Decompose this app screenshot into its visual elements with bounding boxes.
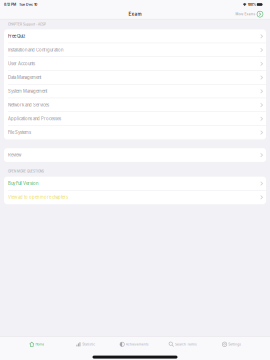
staticText: Network and Services bbox=[8, 102, 49, 108]
button[interactable]: System Management bbox=[4, 84, 266, 98]
staticText: Tue Dec 10 bbox=[16, 2, 37, 7]
staticText: Search Terms bbox=[175, 342, 197, 346]
staticText: File Systems bbox=[8, 130, 31, 135]
staticText: Review bbox=[8, 152, 21, 158]
staticText: Free Quiz bbox=[8, 34, 25, 39]
staticText: Data Management bbox=[8, 75, 41, 80]
staticText: View ad to open more chapters bbox=[8, 195, 68, 200]
button[interactable]: Data Management bbox=[4, 71, 266, 84]
staticText: Home bbox=[35, 342, 44, 346]
button[interactable]: Statistic bbox=[61, 337, 110, 352]
button[interactable]: User Accounts bbox=[4, 57, 266, 71]
staticText: System Management bbox=[8, 89, 47, 94]
button[interactable]: Settings bbox=[207, 337, 256, 352]
staticText: Statistic bbox=[82, 342, 95, 346]
staticText: CHAPTER Support - ACSP bbox=[8, 22, 46, 26]
staticText: 100% bbox=[247, 2, 256, 7]
staticText: Buy Full Version bbox=[8, 181, 38, 186]
button[interactable]: Home bbox=[12, 337, 61, 352]
button[interactable]: File Systems bbox=[4, 126, 266, 139]
button[interactable]: View ad to open more chapters bbox=[4, 190, 266, 204]
button[interactable]: Achievements bbox=[110, 337, 159, 352]
button[interactable]: Search Terms bbox=[159, 337, 207, 352]
button[interactable]: Free Quiz bbox=[4, 29, 266, 43]
button[interactable]: More Exams bbox=[235, 10, 263, 19]
button[interactable]: Network and Services bbox=[4, 98, 266, 112]
staticText: Installation and Configuration bbox=[8, 47, 63, 53]
staticText: OPEN MORE QUESTIONS bbox=[8, 170, 44, 173]
staticText: Settings bbox=[228, 342, 241, 346]
button[interactable]: Review bbox=[4, 148, 266, 162]
staticText: More Exams bbox=[235, 12, 255, 16]
staticText: Applications and Processes bbox=[8, 116, 61, 121]
staticText: Achievements bbox=[126, 342, 149, 346]
button[interactable]: Buy Full Version bbox=[4, 177, 266, 190]
button[interactable]: Installation and Configuration bbox=[4, 43, 266, 57]
staticText: 8:12 PM bbox=[4, 2, 16, 7]
button[interactable]: Applications and Processes bbox=[4, 112, 266, 126]
staticText: User Accounts bbox=[8, 61, 35, 66]
staticText: Exam bbox=[128, 11, 141, 17]
